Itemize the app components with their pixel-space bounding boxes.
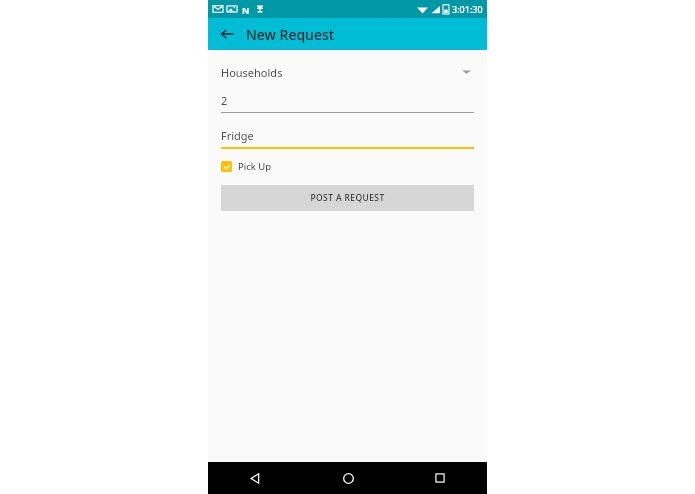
staticText: Households [221, 65, 283, 80]
button[interactable]: Back [216, 23, 238, 45]
staticText: Pick Up [238, 160, 272, 173]
staticText: Fridge [221, 128, 254, 143]
staticText: 2 [221, 93, 228, 108]
staticText: 3:01:30 [452, 3, 483, 15]
button[interactable]: Fridge [221, 128, 474, 149]
staticText: N [242, 4, 250, 14]
button[interactable]: 2 [221, 93, 474, 113]
button[interactable]: Recent apps [425, 463, 455, 493]
staticText: POST A REQUEST [310, 192, 385, 204]
button[interactable]: Pick Up [221, 158, 272, 175]
button[interactable]: Back [240, 463, 270, 493]
button[interactable]: Home [333, 463, 363, 493]
staticText: New Request [246, 25, 335, 44]
button[interactable]: POST A REQUEST [221, 185, 474, 211]
button[interactable]: Households [221, 61, 474, 83]
